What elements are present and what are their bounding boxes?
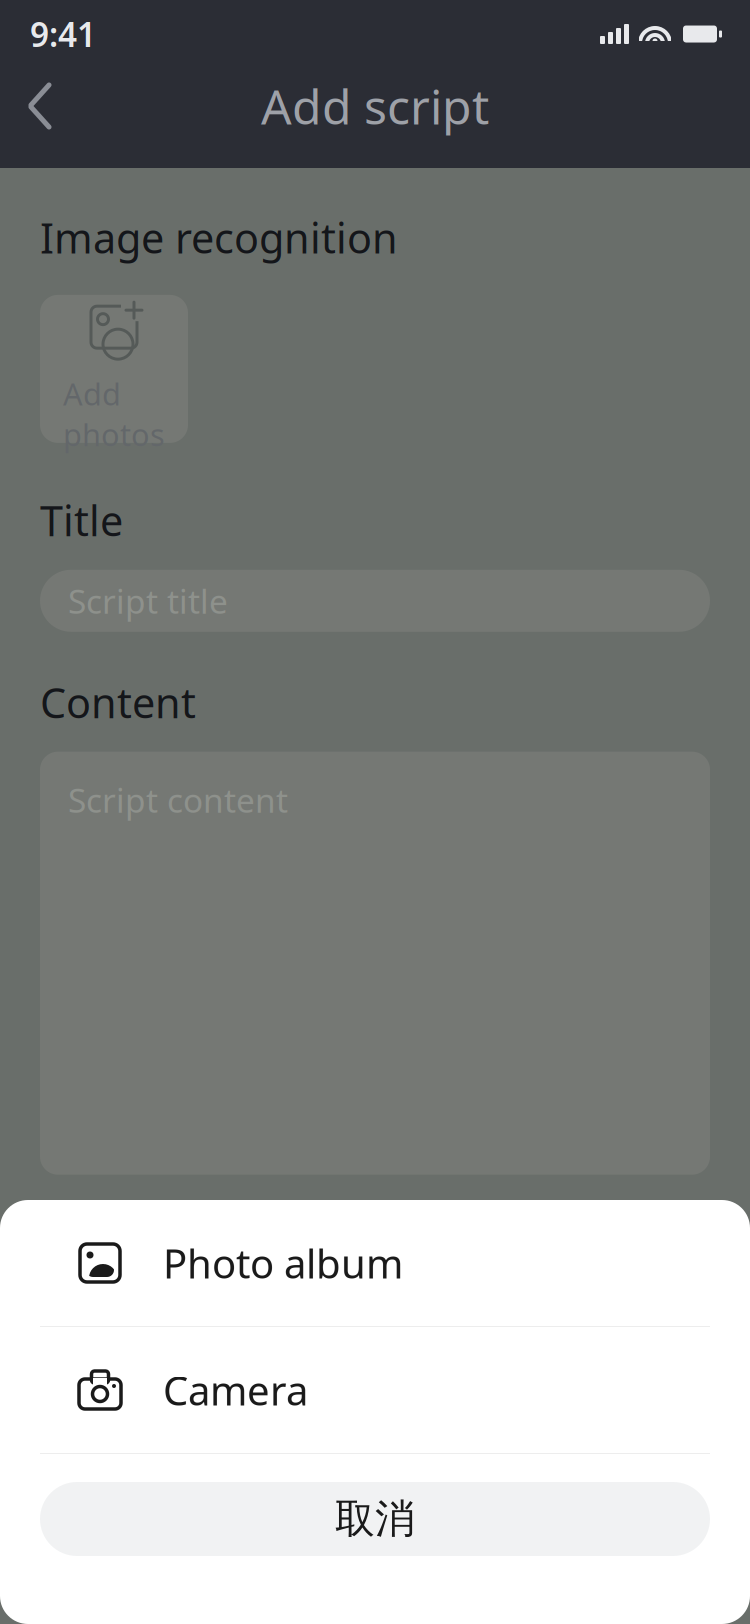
- staticText: Image recognition: [40, 210, 398, 265]
- staticText: Add photos: [63, 373, 165, 455]
- staticText: Script title: [68, 579, 228, 623]
- button[interactable]: Back: [0, 66, 80, 146]
- button[interactable]: 取消: [40, 1482, 710, 1556]
- staticText: Add script: [261, 74, 489, 138]
- staticText: Content: [40, 675, 196, 730]
- staticText: Title: [40, 493, 123, 548]
- button[interactable]: Add photos: [40, 295, 188, 443]
- staticText: Script content: [68, 778, 288, 822]
- button[interactable]: Camera: [0, 1327, 750, 1453]
- staticText: 取消: [335, 1494, 415, 1543]
- staticText: Camera: [163, 1363, 308, 1416]
- button[interactable]: Photo album: [0, 1200, 750, 1326]
- staticText: 9:41: [30, 12, 96, 56]
- staticText: Photo album: [163, 1236, 403, 1289]
